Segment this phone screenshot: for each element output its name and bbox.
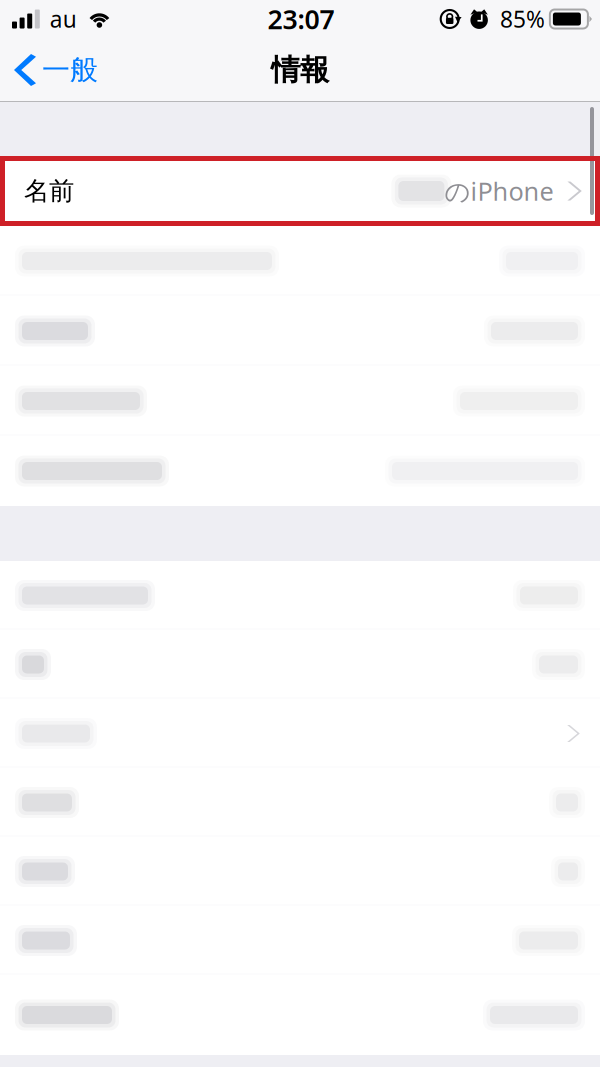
staticText: 一般 [42,53,98,87]
button[interactable] [0,561,600,630]
button[interactable] [0,436,600,506]
button[interactable] [0,906,600,975]
button[interactable] [0,630,600,699]
button[interactable]: 一般 [0,38,108,102]
button[interactable]: 名前 [0,156,600,226]
staticText: のiPhone [444,174,553,208]
button[interactable] [0,226,600,296]
button[interactable] [0,296,600,366]
staticText: 23:07 [267,1,334,37]
staticText: au [50,4,77,34]
staticText: 85% [500,4,545,34]
button[interactable] [0,837,600,906]
button[interactable] [0,768,600,837]
button[interactable] [0,975,600,1055]
button[interactable] [0,366,600,436]
staticText: 情報 [271,52,329,88]
button[interactable] [0,699,600,768]
staticText: 名前 [24,175,74,206]
